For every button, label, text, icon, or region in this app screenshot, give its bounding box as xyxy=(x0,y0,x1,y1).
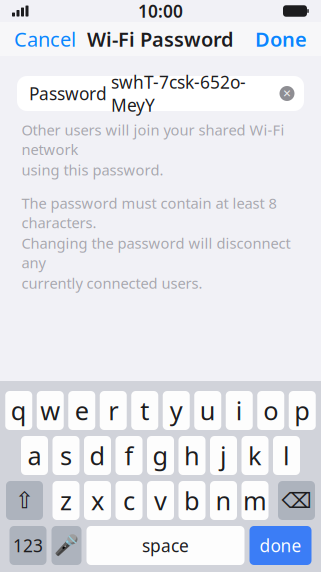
staticText: using this password. xyxy=(21,160,163,179)
staticText: Wi-Fi Password xyxy=(87,26,234,52)
button[interactable]: Dictation xyxy=(51,526,81,565)
staticText: Cancel xyxy=(14,26,76,52)
button[interactable]: w xyxy=(37,391,64,430)
button[interactable]: q xyxy=(5,391,32,430)
staticText: q xyxy=(11,394,27,427)
staticText: Done xyxy=(255,26,307,52)
staticText: swhT-7csk-652o-MeyY xyxy=(111,70,246,116)
staticText: o xyxy=(263,394,278,427)
button[interactable]: g xyxy=(147,436,174,475)
staticText: currently connected users. xyxy=(21,273,202,293)
staticText: s xyxy=(60,439,72,472)
button[interactable]: t xyxy=(131,391,158,430)
button[interactable]: Done xyxy=(241,18,321,60)
staticText: Changing the password will disconnect an… xyxy=(21,233,290,272)
staticText: space xyxy=(142,534,189,557)
staticText: 123 xyxy=(13,534,43,557)
button[interactable]: a xyxy=(21,436,48,475)
button[interactable]: h xyxy=(178,436,205,475)
button[interactable]: s xyxy=(52,436,79,475)
staticText: t xyxy=(140,394,149,427)
button[interactable]: n xyxy=(210,481,237,520)
staticText: ✕ xyxy=(282,87,291,99)
button[interactable]: Delete xyxy=(278,481,315,520)
button[interactable]: f xyxy=(115,436,142,475)
button[interactable]: done xyxy=(249,526,311,565)
button[interactable]: c xyxy=(115,481,142,520)
staticText: j xyxy=(220,439,227,472)
staticText: a xyxy=(27,439,41,472)
staticText: Other users will join your shared Wi-Fi … xyxy=(21,120,284,159)
staticText: x xyxy=(91,484,104,517)
staticText: d xyxy=(89,439,105,472)
staticText: e xyxy=(75,394,89,427)
staticText: n xyxy=(215,484,231,517)
button[interactable]: z xyxy=(52,481,79,520)
button[interactable]: Shift xyxy=(6,481,43,520)
staticText: i xyxy=(236,394,243,427)
button[interactable]: v xyxy=(147,481,174,520)
staticText: v xyxy=(154,484,167,517)
staticText: k xyxy=(248,439,262,472)
button[interactable]: u xyxy=(194,391,221,430)
staticText: h xyxy=(184,439,200,472)
button[interactable]: p xyxy=(289,391,316,430)
staticText: Password xyxy=(29,82,107,105)
button[interactable]: r xyxy=(100,391,127,430)
button[interactable]: m xyxy=(241,481,268,520)
button[interactable]: Cancel xyxy=(0,18,90,60)
button[interactable]: space xyxy=(86,526,244,565)
staticText: 10:00 xyxy=(138,0,183,22)
button[interactable]: Clear text xyxy=(274,78,300,108)
button[interactable]: e xyxy=(68,391,95,430)
staticText: g xyxy=(152,439,168,472)
staticText: ⇧ xyxy=(15,488,34,513)
staticText: b xyxy=(184,484,200,517)
button[interactable]: j xyxy=(210,436,237,475)
staticText: f xyxy=(124,439,133,472)
button[interactable]: o xyxy=(257,391,284,430)
button[interactable]: b xyxy=(178,481,205,520)
button[interactable]: 123 xyxy=(9,526,46,565)
button[interactable]: l xyxy=(273,436,300,475)
staticText: The password must contain at least 8 cha… xyxy=(21,193,276,232)
staticText: z xyxy=(60,484,72,517)
staticText: ⌫ xyxy=(281,488,311,513)
button[interactable]: d xyxy=(84,436,111,475)
staticText: u xyxy=(200,394,216,427)
staticText: m xyxy=(243,484,267,517)
staticText: 🎤 xyxy=(54,534,79,557)
staticText: r xyxy=(108,394,118,427)
staticText: c xyxy=(123,484,135,517)
button[interactable]: k xyxy=(241,436,268,475)
staticText: y xyxy=(170,394,183,427)
staticText: l xyxy=(283,439,290,472)
button[interactable]: i xyxy=(226,391,253,430)
button[interactable]: y xyxy=(163,391,190,430)
staticText: p xyxy=(294,394,310,427)
staticText: done xyxy=(259,534,301,557)
staticText: w xyxy=(40,394,60,427)
button[interactable]: x xyxy=(84,481,111,520)
